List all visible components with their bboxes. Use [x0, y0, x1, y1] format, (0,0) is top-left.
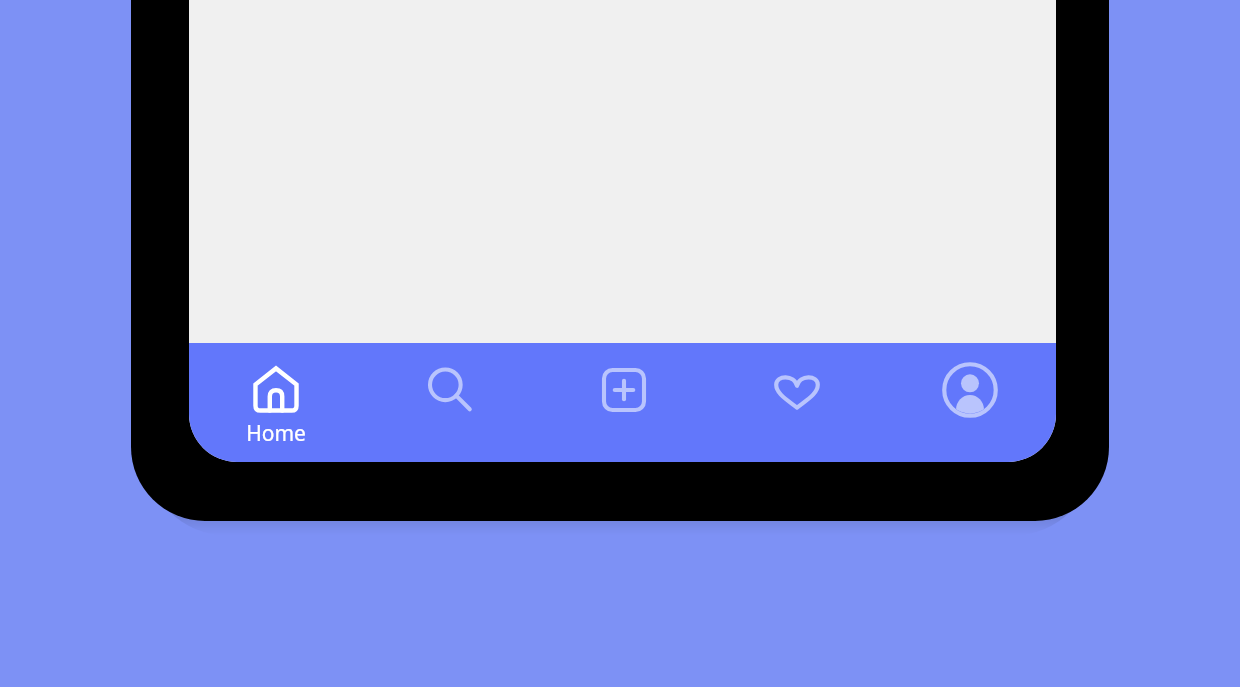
staticText: Home	[246, 419, 306, 448]
button[interactable]: Search	[363, 343, 537, 462]
button[interactable]: Create new post	[537, 343, 710, 462]
button[interactable]: Profile	[883, 343, 1056, 462]
button[interactable]: Likes	[710, 343, 883, 462]
button[interactable]: Home	[189, 343, 363, 462]
